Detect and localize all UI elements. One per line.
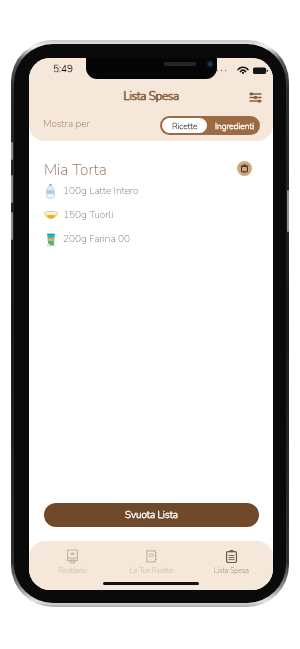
button[interactable]: Le Tue Ricette xyxy=(114,545,188,576)
staticText: 150g Tuorli xyxy=(63,208,114,222)
button[interactable]: 150g Tuorli xyxy=(42,203,261,227)
staticText: Lista Spesa xyxy=(123,89,179,104)
button[interactable]: Svuota Lista xyxy=(44,503,259,527)
button[interactable]: Delete list xyxy=(237,161,252,176)
staticText: Ricette xyxy=(172,120,198,132)
staticText: Lista Spesa xyxy=(214,566,249,576)
button[interactable]: Filter xyxy=(245,88,266,107)
staticText: 100g Latte Intero xyxy=(63,184,139,198)
staticText: Mia Torta xyxy=(44,159,107,180)
staticText: Ingredienti xyxy=(215,120,255,132)
staticText: Svuota Lista xyxy=(125,508,178,522)
staticText: Ricettario xyxy=(58,566,87,576)
button[interactable]: Ricette xyxy=(162,118,207,133)
staticText: 200g Farina 00 xyxy=(63,232,130,246)
button[interactable]: 100g Latte Intero xyxy=(42,179,261,203)
staticText: 5:49 xyxy=(53,62,74,76)
button[interactable]: 200g Farina 00 xyxy=(42,227,261,251)
staticText: Lista Spesa xyxy=(124,89,180,104)
staticText: Mostra per xyxy=(43,117,90,131)
staticText: Le Tue Ricette xyxy=(130,566,173,576)
button[interactable]: Lista Spesa xyxy=(194,545,268,576)
button[interactable]: Ricettario xyxy=(35,545,109,576)
button[interactable]: Ingredienti xyxy=(209,116,260,135)
